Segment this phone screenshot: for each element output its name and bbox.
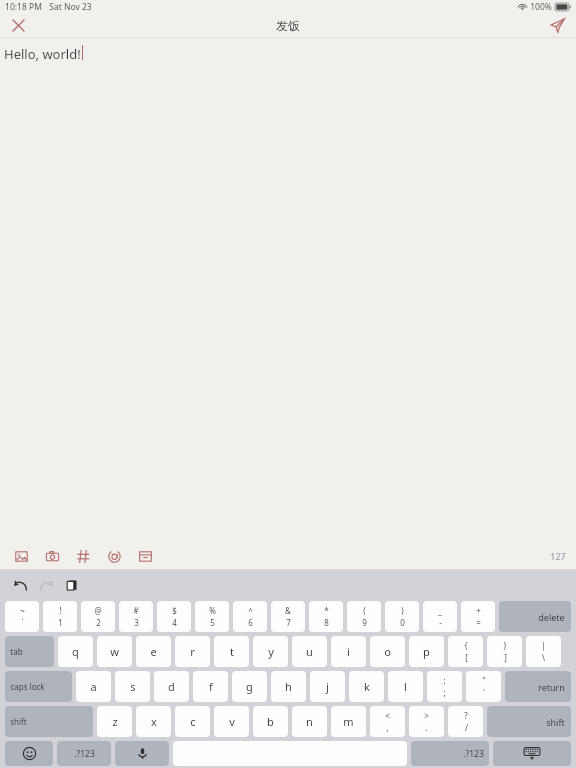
button[interactable]: ) — [385, 601, 419, 632]
staticText: ` — [21, 617, 24, 628]
button[interactable]: shift — [5, 706, 93, 737]
button[interactable]: n — [292, 706, 327, 737]
staticText: m — [343, 714, 354, 729]
button[interactable]: v — [214, 706, 249, 737]
button[interactable]: : — [427, 671, 462, 702]
button[interactable]: { — [448, 636, 483, 667]
button[interactable]: tab — [5, 636, 54, 667]
button[interactable]: @ — [81, 601, 115, 632]
staticText: tab — [10, 646, 23, 657]
button[interactable]: f — [193, 671, 228, 702]
staticText: j — [326, 679, 329, 694]
button[interactable]: Photo — [6, 543, 37, 569]
button[interactable]: % — [195, 601, 229, 632]
button[interactable]: $ — [157, 601, 191, 632]
button[interactable]: Emoji — [5, 741, 53, 766]
staticText: e — [150, 644, 157, 659]
staticText: " — [482, 675, 486, 686]
button[interactable]: q — [58, 636, 93, 667]
button[interactable]: r — [175, 636, 210, 667]
button[interactable]: } — [487, 636, 522, 667]
button[interactable]: c — [175, 706, 210, 737]
button[interactable]: Hide keyboard — [493, 741, 571, 766]
button[interactable]: b — [253, 706, 288, 737]
button[interactable]: u — [292, 636, 327, 667]
button[interactable]: " — [466, 671, 501, 702]
button[interactable]: shift — [487, 706, 571, 737]
staticText: g — [246, 679, 253, 694]
button[interactable]: # — [119, 601, 153, 632]
button[interactable]: ! — [43, 601, 77, 632]
button[interactable]: s — [115, 671, 150, 702]
staticText: 2 — [96, 617, 101, 628]
button[interactable]: j — [310, 671, 345, 702]
button[interactable]: y — [253, 636, 288, 667]
button[interactable]: h — [271, 671, 306, 702]
button[interactable]: return — [505, 671, 571, 702]
button[interactable]: < — [370, 706, 405, 737]
staticText: ^ — [248, 605, 253, 616]
button[interactable]: .?123 — [57, 741, 111, 766]
button[interactable]: Close — [6, 14, 30, 37]
button[interactable]: | — [526, 636, 561, 667]
button[interactable]: d — [154, 671, 189, 702]
button[interactable]: caps lock — [5, 671, 72, 702]
button[interactable]: _ — [423, 601, 457, 632]
staticText: 1 — [58, 617, 63, 628]
button[interactable]: Paste — [60, 573, 84, 597]
staticText: l — [404, 679, 407, 694]
button[interactable]: Hashtag — [68, 543, 99, 569]
staticText: 7 — [286, 617, 291, 628]
button[interactable]: Dictate — [115, 741, 169, 766]
staticText: @ — [94, 605, 102, 616]
button[interactable]: k — [349, 671, 384, 702]
button[interactable]: a — [76, 671, 111, 702]
button[interactable]: o — [370, 636, 405, 667]
button[interactable]: m — [331, 706, 366, 737]
staticText: a — [90, 679, 97, 694]
button[interactable]: * — [309, 601, 343, 632]
button[interactable]: .?123 — [411, 741, 489, 766]
button[interactable]: delete — [499, 601, 571, 632]
staticText: f — [209, 679, 213, 694]
staticText: k — [364, 679, 370, 694]
button[interactable]: Send — [544, 14, 570, 37]
staticText: ; — [443, 687, 446, 698]
staticText: / — [465, 722, 468, 733]
button[interactable]: Archive — [130, 543, 161, 569]
button[interactable]: + — [461, 601, 495, 632]
button[interactable]: Undo — [8, 573, 32, 597]
button[interactable]: Camera — [37, 543, 68, 569]
button[interactable]: ^ — [233, 601, 267, 632]
staticText: 0 — [400, 617, 405, 628]
button[interactable]: ( — [347, 601, 381, 632]
staticText: return — [538, 681, 565, 693]
button[interactable]: Redo — [34, 573, 58, 597]
staticText: < — [385, 710, 390, 721]
staticText: % — [209, 605, 216, 616]
button[interactable]: ? — [448, 706, 483, 737]
button[interactable]: > — [409, 706, 444, 737]
staticText: 5 — [210, 617, 215, 628]
button[interactable]: & — [271, 601, 305, 632]
button[interactable]: w — [97, 636, 132, 667]
button[interactable]: Mention — [99, 543, 130, 569]
staticText: _ — [438, 605, 442, 616]
button[interactable]: i — [331, 636, 366, 667]
button[interactable]: g — [232, 671, 267, 702]
button[interactable]: x — [136, 706, 171, 737]
button[interactable]: l — [388, 671, 423, 702]
button[interactable]: t — [214, 636, 249, 667]
staticText: $ — [172, 605, 177, 616]
staticText: s — [130, 679, 136, 694]
staticText: .?123 — [463, 748, 484, 760]
button[interactable]: z — [97, 706, 132, 737]
staticText: ~ — [20, 605, 25, 616]
button[interactable]: e — [136, 636, 171, 667]
staticText: * — [324, 605, 329, 616]
staticText: d — [168, 679, 175, 694]
button[interactable]: ~ — [5, 601, 39, 632]
staticText: 8 — [324, 617, 329, 628]
button[interactable]: p — [409, 636, 444, 667]
